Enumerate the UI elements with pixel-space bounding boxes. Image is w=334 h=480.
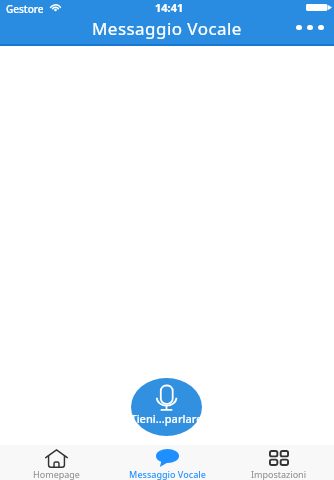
staticText: Messaggio Vocale <box>129 468 206 480</box>
staticText: Messaggio Vocale <box>92 17 242 40</box>
button[interactable]: Homepage <box>0 445 112 480</box>
staticText: Impostazioni <box>251 468 306 480</box>
staticText: Homepage <box>33 468 80 480</box>
button[interactable]: More options <box>290 15 330 39</box>
button[interactable]: Messaggio Vocale <box>112 445 223 480</box>
staticText: Tieni...parlare <box>130 411 203 426</box>
staticText: Gestore <box>6 2 44 16</box>
staticText: 14:41 <box>155 0 184 15</box>
button[interactable]: Impostazioni <box>223 445 334 480</box>
button[interactable]: Tieni premuto per parlare <box>123 374 210 440</box>
